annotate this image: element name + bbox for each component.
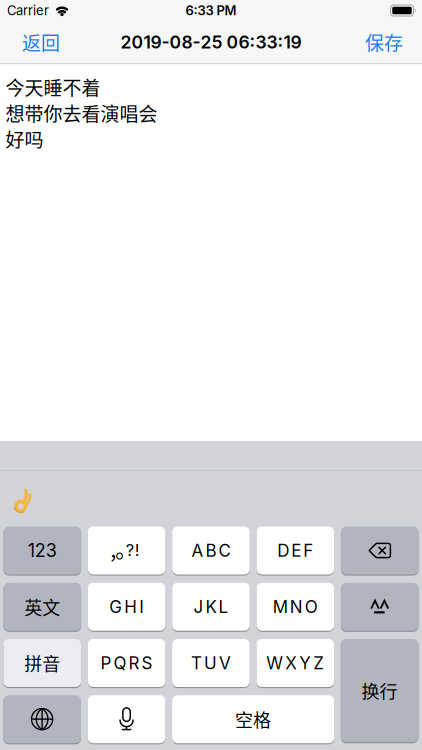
- button[interactable]: TUV: [172, 639, 250, 688]
- staticText: 想带你去看演唱会: [5, 99, 157, 127]
- button[interactable]: WXYZ: [256, 639, 334, 688]
- staticText: 保存: [365, 28, 403, 56]
- staticText: 123: [28, 540, 57, 561]
- staticText: 今天睡不着: [5, 73, 100, 101]
- button[interactable]: 返回: [22, 28, 60, 56]
- staticText: DEF: [277, 540, 313, 561]
- button[interactable]: 空格: [172, 695, 334, 744]
- staticText: JKL: [193, 596, 228, 617]
- staticText: 6:33 PM: [185, 3, 236, 18]
- button[interactable]: 听写: [88, 695, 165, 744]
- button[interactable]: 拼音键盘: [3, 639, 81, 688]
- staticText: PQRS: [100, 653, 152, 673]
- button[interactable]: 下一个键盘: [3, 695, 81, 744]
- button[interactable]: 颜文字: [341, 583, 418, 632]
- staticText: ABC: [191, 540, 230, 561]
- staticText: 。: [115, 532, 137, 564]
- button[interactable]: 保存: [365, 28, 403, 56]
- button[interactable]: ,: [88, 526, 165, 576]
- staticText: ,: [110, 532, 116, 564]
- staticText: 空格: [235, 706, 271, 732]
- button[interactable]: MNO: [256, 583, 334, 632]
- button[interactable]: 候选词 👌: [14, 487, 31, 511]
- staticText: 换行: [362, 677, 398, 704]
- button[interactable]: 换行: [341, 639, 418, 743]
- button[interactable]: 数字键盘: [3, 526, 81, 576]
- staticText: GHI: [109, 596, 144, 617]
- button[interactable]: ABC: [172, 526, 250, 576]
- staticText: Carrier: [7, 3, 49, 18]
- staticText: WXYZ: [266, 653, 324, 673]
- staticText: !: [135, 540, 140, 560]
- staticText: 2019-08-25 06:33:19: [120, 32, 301, 53]
- button[interactable]: PQRS: [88, 639, 165, 688]
- staticText: MNO: [273, 596, 318, 617]
- button[interactable]: JKL: [172, 583, 250, 632]
- staticText: ?: [126, 540, 134, 560]
- button[interactable]: DEF: [256, 526, 334, 576]
- button[interactable]: 删除: [341, 526, 418, 576]
- staticText: 返回: [22, 28, 60, 56]
- staticText: TUV: [191, 653, 231, 673]
- staticText: 好吗: [5, 125, 43, 153]
- button[interactable]: 英文键盘: [3, 583, 81, 632]
- staticText: 英文: [24, 594, 60, 620]
- button[interactable]: GHI: [88, 583, 165, 632]
- staticText: 拼音: [24, 650, 60, 676]
